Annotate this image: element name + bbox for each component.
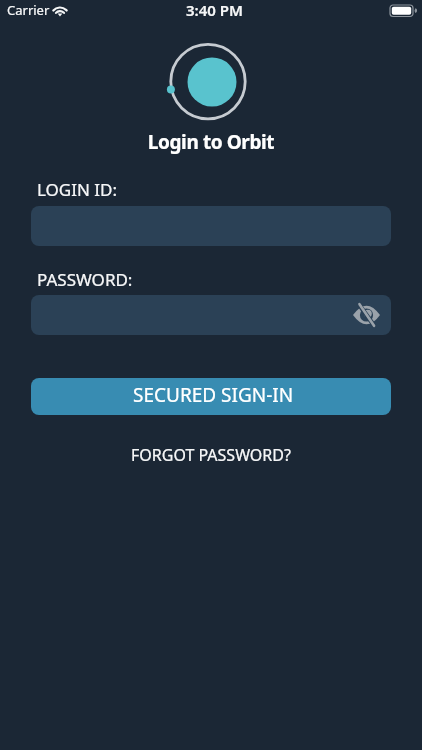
staticText: Carrier <box>7 1 50 19</box>
staticText: FORGOT PASSWORD? <box>131 444 291 466</box>
button[interactable] <box>353 304 380 326</box>
staticText: Login to Orbit <box>0 129 422 155</box>
button[interactable] <box>31 295 391 335</box>
staticText: PASSWORD: <box>37 268 133 291</box>
staticText: LOGIN ID: <box>37 178 118 201</box>
button[interactable]: FORGOT PASSWORD? <box>131 442 291 468</box>
staticText: SECURED SIGN-IN <box>133 382 294 408</box>
button[interactable]: SECURED SIGN-IN <box>31 378 391 415</box>
staticText: 3:40 PM <box>186 0 243 20</box>
